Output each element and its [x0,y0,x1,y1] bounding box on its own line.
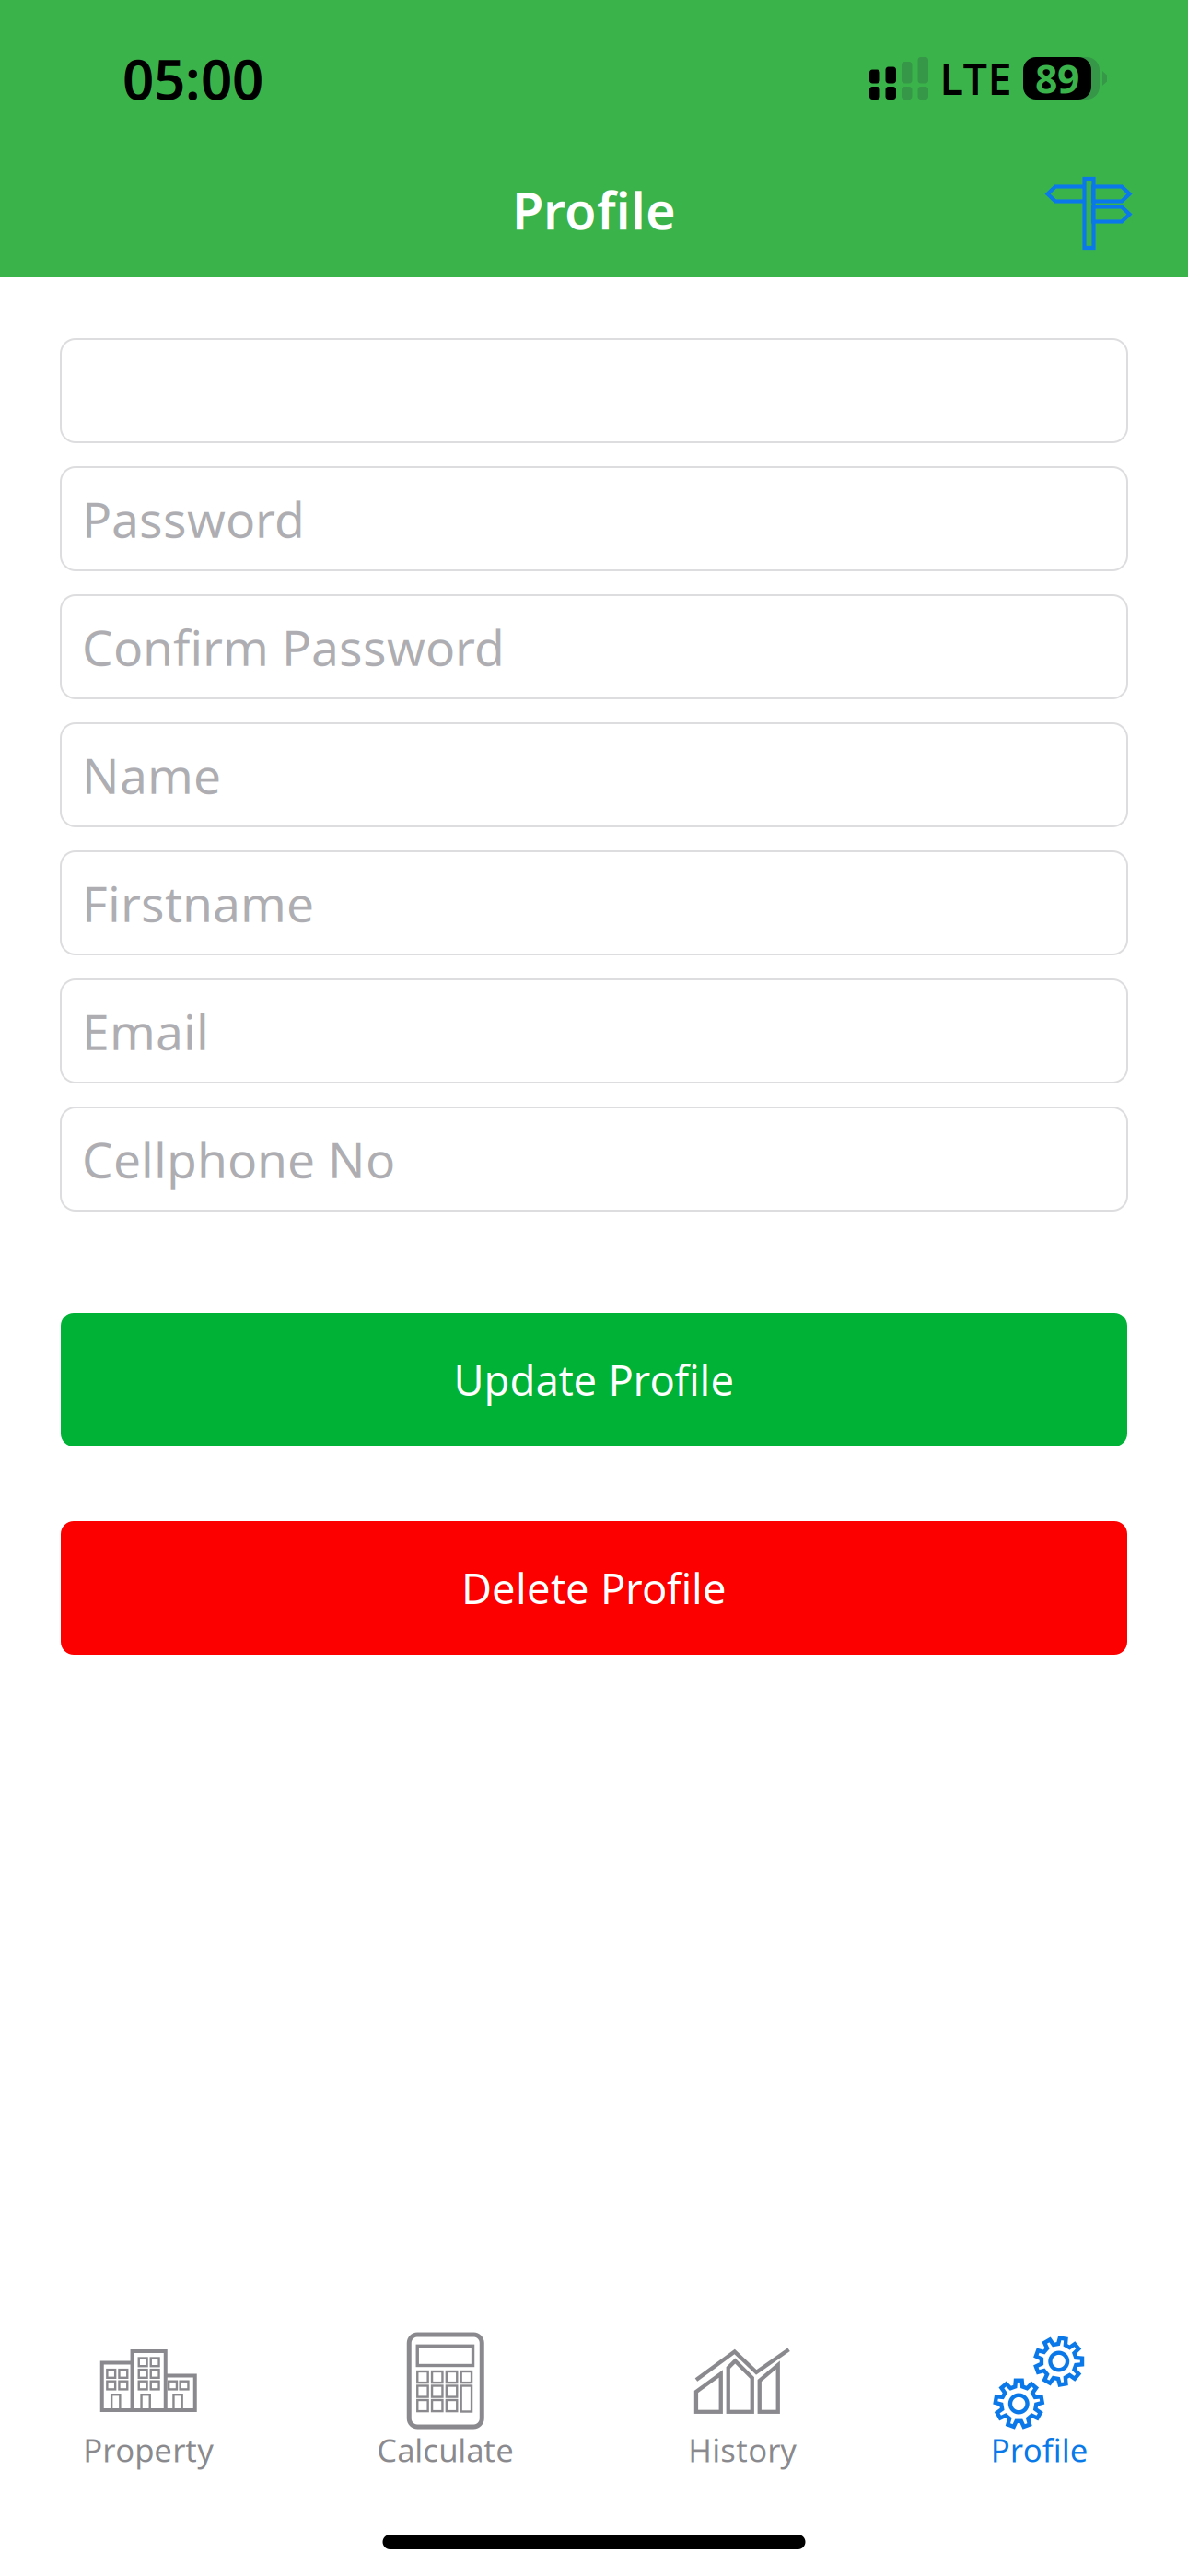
button[interactable]: Name [61,723,1127,826]
button[interactable]: Profile [891,2333,1188,2471]
staticText: Firstname [82,870,314,936]
button[interactable]: Email [61,979,1127,1083]
staticText: Property [83,2429,214,2471]
staticText: Confirm Password [82,614,505,679]
staticText: Email [82,998,209,1064]
staticText: Update Profile [454,1352,734,1407]
button[interactable]: Directions [1031,160,1147,274]
staticText: 89 [1035,52,1079,104]
staticText: History [688,2429,797,2471]
staticText: LTE [940,50,1012,107]
button[interactable]: Firstname [61,851,1127,954]
staticText: Delete Profile [461,1560,727,1616]
button[interactable]: History [594,2333,891,2471]
staticText: Cellphone No [82,1126,395,1192]
staticText: Profile [991,2429,1088,2471]
button[interactable]: Delete Profile [61,1521,1127,1655]
button[interactable]: Confirm Password [61,595,1127,698]
staticText: Profile [512,175,676,244]
button[interactable]: Password [61,467,1127,570]
button[interactable]: Username [61,339,1127,442]
button[interactable]: Property [0,2333,297,2471]
button[interactable]: Calculate [297,2333,594,2471]
button[interactable]: Cellphone No [61,1107,1127,1211]
staticText: Name [82,742,221,807]
staticText: Password [82,486,305,551]
button[interactable]: Update Profile [61,1313,1127,1446]
staticText: Calculate [377,2429,514,2471]
staticText: 05:00 [122,42,263,115]
